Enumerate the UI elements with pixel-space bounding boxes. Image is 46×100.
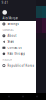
staticText: REGION: [2, 58, 12, 61]
staticText: Share: [7, 40, 14, 43]
button[interactable]: About: [0, 33, 36, 39]
staticText: Contact us: [7, 46, 21, 49]
button[interactable]: Republic of Korea: [0, 63, 36, 69]
button[interactable]: Home: [20, 93, 26, 100]
button[interactable]: Share: [0, 39, 36, 45]
staticText: Alex Morgan: [2, 16, 18, 20]
button[interactable]: Rate this app: [0, 51, 36, 57]
staticText: Settings: [7, 22, 18, 26]
button[interactable]: Contact us: [0, 45, 36, 51]
staticText: 9:41: [2, 1, 9, 4]
staticText: Rate this app: [7, 52, 25, 55]
staticText: GENERAL: [2, 28, 13, 32]
staticText: Republic of Korea: [7, 64, 33, 67]
button[interactable]: Recents: [34, 93, 40, 100]
button[interactable]: Settings: [0, 21, 36, 27]
staticText: About: [7, 34, 16, 37]
button[interactable]: Back: [6, 93, 12, 100]
button[interactable]: Alex Morgan: [0, 10, 36, 20]
